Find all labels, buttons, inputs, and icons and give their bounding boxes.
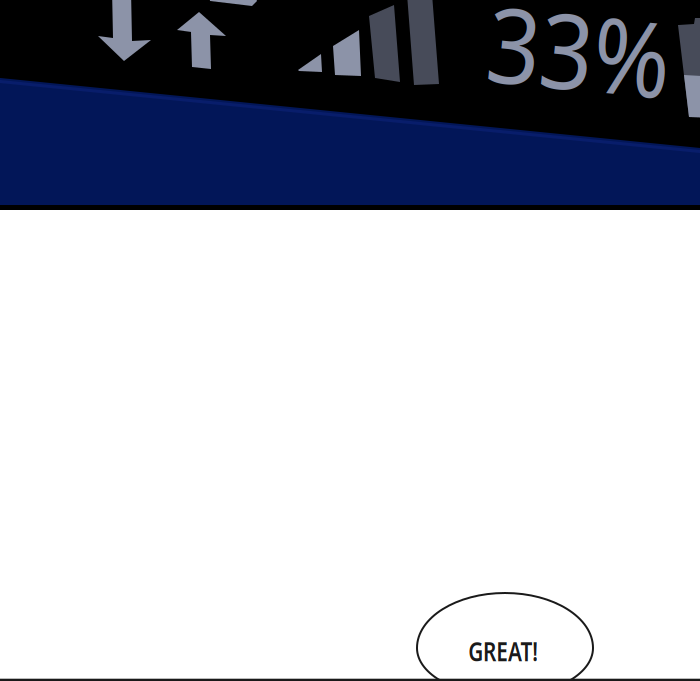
staticText: 33% xyxy=(477,0,681,119)
staticText: GREAT! xyxy=(458,633,547,669)
